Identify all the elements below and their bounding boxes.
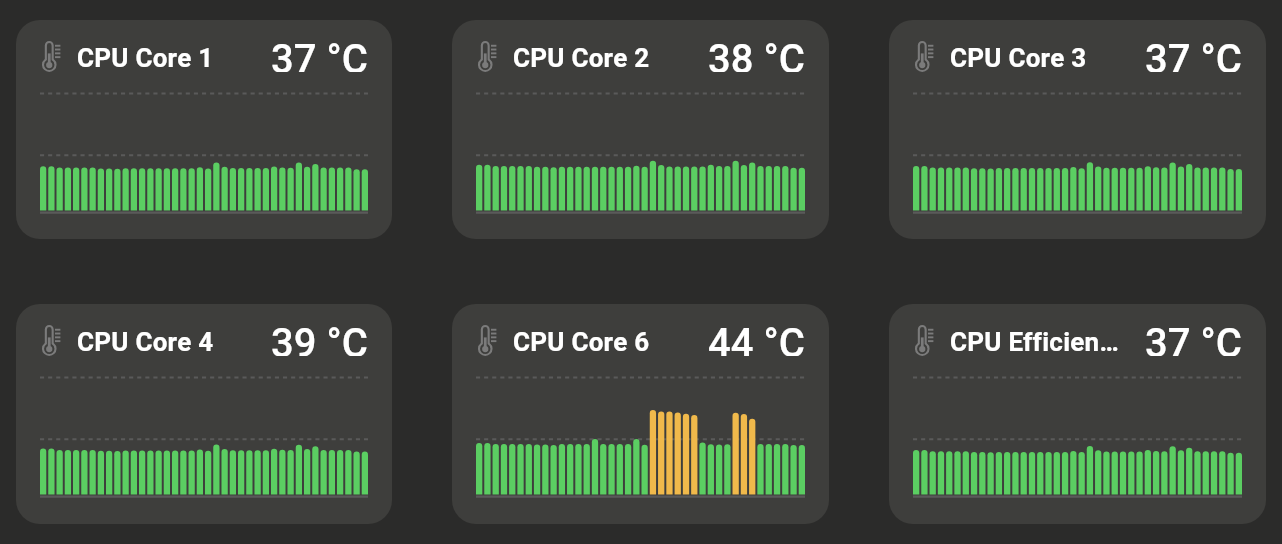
button[interactable]: Temperature bbox=[16, 304, 392, 524]
button[interactable]: Temperature bbox=[16, 20, 392, 239]
other: Temperature bbox=[913, 41, 934, 72]
button[interactable]: Temperature bbox=[452, 304, 829, 524]
staticText: CPU Core 1 bbox=[77, 43, 246, 73]
staticText: CPU Core 6 bbox=[513, 327, 683, 357]
staticText: CPU Core 2 bbox=[513, 43, 683, 73]
button[interactable]: Temperature bbox=[889, 20, 1266, 239]
other: Temperature bbox=[476, 325, 497, 356]
other: Temperature bbox=[40, 41, 61, 72]
staticText: 38 °C bbox=[708, 36, 805, 72]
staticText: CPU Efficiency Core bbox=[950, 327, 1120, 357]
button[interactable]: Temperature bbox=[452, 20, 829, 239]
staticText: 37 °C bbox=[1145, 320, 1242, 356]
other: Temperature bbox=[476, 41, 497, 72]
staticText: 37 °C bbox=[1145, 36, 1242, 72]
staticText: CPU Core 3 bbox=[950, 43, 1120, 73]
staticText: 44 °C bbox=[708, 320, 805, 356]
button[interactable]: Temperature bbox=[889, 304, 1266, 524]
staticText: CPU Core 4 bbox=[77, 327, 246, 357]
staticText: 39 °C bbox=[271, 320, 368, 356]
other: Temperature bbox=[40, 325, 61, 356]
other: Temperature bbox=[913, 325, 934, 356]
staticText: 37 °C bbox=[271, 36, 368, 72]
